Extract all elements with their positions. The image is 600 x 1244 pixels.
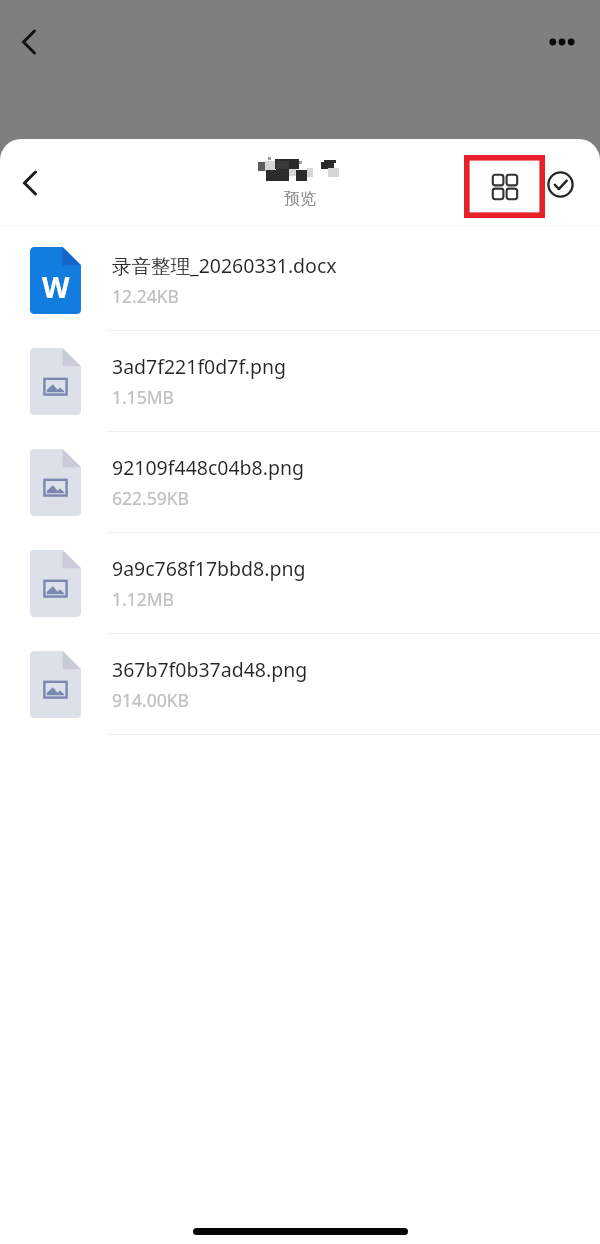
button[interactable]: Grid view [464, 155, 545, 218]
button[interactable]: 92109f448c04b8.png [0, 432, 600, 533]
button[interactable]: Select [547, 171, 574, 198]
button[interactable]: Back [8, 161, 52, 205]
staticText: 1.15MB [112, 385, 174, 409]
staticText: 367b7f0b37ad48.png [112, 656, 308, 683]
button[interactable]: Back [5, 18, 53, 66]
staticText: 9a9c768f17bbd8.png [112, 555, 306, 582]
button[interactable]: 3ad7f221f0d7f.png [0, 331, 600, 432]
staticText: 录音整理_20260331.docx [112, 252, 337, 279]
button[interactable]: More options [538, 18, 586, 66]
staticText: 12.24KB [112, 284, 179, 308]
staticText: W [42, 268, 70, 307]
button[interactable]: W [0, 230, 600, 331]
staticText: 914.00KB [112, 688, 189, 712]
button[interactable]: 9a9c768f17bbd8.png [0, 533, 600, 634]
staticText: 3ad7f221f0d7f.png [112, 353, 286, 380]
staticText: 1.12MB [112, 587, 174, 611]
staticText: 预览 [284, 189, 316, 209]
staticText: 92109f448c04b8.png [112, 454, 305, 481]
button[interactable]: 367b7f0b37ad48.png [0, 634, 600, 735]
staticText: 622.59KB [112, 486, 189, 510]
